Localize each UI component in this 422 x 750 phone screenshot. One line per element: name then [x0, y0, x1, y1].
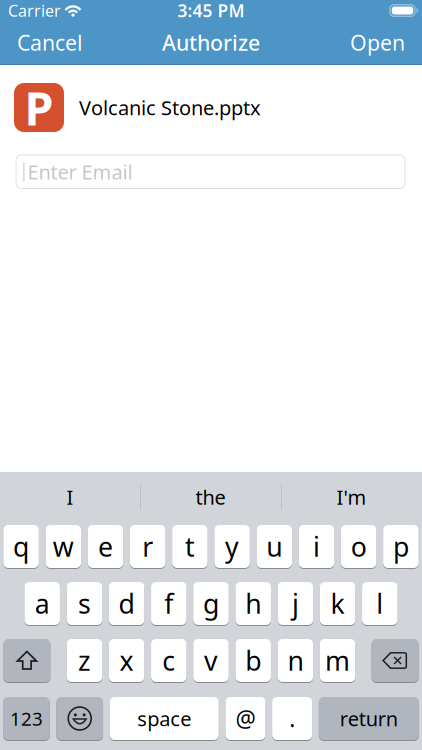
button[interactable]: x — [109, 639, 144, 682]
staticText: @ — [235, 703, 255, 733]
button[interactable]: c — [151, 639, 187, 682]
staticText: Open — [350, 28, 405, 57]
button[interactable]: a — [24, 582, 60, 625]
button[interactable]: return — [319, 697, 419, 740]
button[interactable]: v — [193, 639, 229, 682]
button[interactable]: . — [272, 697, 312, 740]
button[interactable]: i — [299, 525, 334, 568]
button[interactable]: q — [3, 525, 39, 568]
staticText: i — [313, 529, 320, 564]
button[interactable]: e — [88, 525, 123, 568]
staticText: Volcanic Stone.pptx — [79, 94, 261, 121]
staticText: l — [376, 586, 383, 621]
staticText: w — [53, 529, 74, 564]
button[interactable]: r — [130, 525, 165, 568]
button[interactable]: f — [151, 582, 187, 625]
staticText: I — [66, 484, 73, 510]
button[interactable]: space — [110, 697, 219, 740]
staticText: g — [203, 586, 219, 621]
button[interactable]: @ — [225, 697, 265, 740]
button[interactable]: w — [45, 525, 81, 568]
staticText: t — [185, 529, 195, 564]
staticText: v — [204, 643, 218, 678]
staticText: m — [325, 643, 350, 678]
button[interactable]: s — [67, 582, 102, 625]
staticText: return — [340, 705, 398, 732]
staticText: s — [78, 586, 91, 621]
staticText: x — [120, 643, 134, 678]
staticText: y — [225, 529, 239, 564]
staticText: the — [195, 484, 225, 510]
staticText: P — [24, 76, 53, 138]
button[interactable]: h — [235, 582, 271, 625]
button[interactable]: Delete — [372, 639, 419, 682]
button[interactable]: j — [278, 582, 313, 625]
button[interactable]: b — [235, 639, 271, 682]
button[interactable]: k — [320, 582, 355, 625]
button[interactable]: o — [341, 525, 376, 568]
staticText: u — [266, 529, 282, 564]
button[interactable]: Shift — [3, 639, 50, 682]
staticText: 3:45 PM — [177, 0, 244, 22]
staticText: Enter Email — [28, 158, 133, 185]
button[interactable]: Emoji — [56, 697, 103, 740]
staticText: z — [78, 643, 91, 678]
staticText: h — [245, 586, 261, 621]
button[interactable]: u — [256, 525, 292, 568]
staticText: b — [245, 643, 261, 678]
button[interactable]: 123 — [3, 697, 50, 740]
staticText: e — [98, 529, 113, 564]
button[interactable]: I — [0, 472, 140, 522]
staticText: . — [289, 703, 295, 733]
staticText: Authorize — [162, 28, 260, 57]
staticText: j — [292, 586, 299, 621]
staticText: a — [35, 586, 50, 621]
button[interactable]: n — [278, 639, 313, 682]
button[interactable]: Open — [350, 28, 422, 57]
staticText: Carrier — [8, 0, 61, 21]
staticText: Cancel — [17, 28, 83, 57]
button[interactable]: Cancel — [0, 28, 83, 57]
staticText: space — [137, 705, 191, 732]
button[interactable]: y — [214, 525, 250, 568]
staticText: I'm — [336, 484, 366, 510]
staticText: k — [331, 586, 345, 621]
staticText: o — [351, 529, 367, 564]
staticText: d — [119, 586, 135, 621]
staticText: n — [287, 643, 303, 678]
staticText: c — [162, 643, 175, 678]
button[interactable]: l — [362, 582, 397, 625]
staticText: f — [164, 586, 173, 621]
button[interactable]: d — [109, 582, 144, 625]
staticText: r — [142, 529, 153, 564]
button[interactable]: Enter Email — [16, 155, 405, 188]
button[interactable]: t — [172, 525, 208, 568]
button[interactable]: g — [193, 582, 229, 625]
button[interactable]: I'm — [281, 472, 422, 522]
staticText: q — [13, 529, 29, 564]
button[interactable]: p — [383, 525, 419, 568]
button[interactable]: m — [320, 639, 355, 682]
staticText: 123 — [10, 706, 43, 731]
button[interactable]: z — [67, 639, 102, 682]
staticText: p — [393, 529, 409, 564]
button[interactable]: the — [140, 472, 281, 522]
